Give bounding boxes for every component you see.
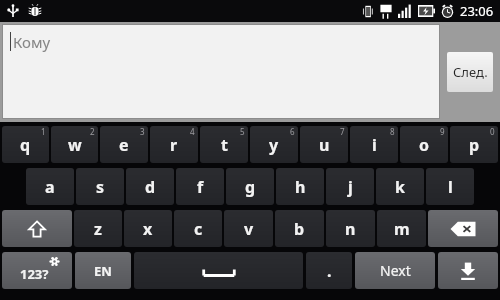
button[interactable]: c: [174, 210, 222, 247]
staticText: o: [419, 134, 430, 156]
staticText: .: [327, 260, 332, 282]
button[interactable]: След.: [447, 52, 493, 92]
staticText: r: [170, 134, 178, 156]
staticText: 5: [240, 126, 245, 137]
staticText: 8: [390, 126, 395, 137]
button[interactable]: t: [200, 126, 248, 163]
staticText: 123?: [20, 265, 49, 283]
button[interactable]: w: [51, 126, 98, 163]
button[interactable]: g: [226, 168, 274, 205]
staticText: t: [221, 134, 228, 156]
staticText: c: [194, 218, 203, 240]
button[interactable]: Next: [355, 252, 435, 289]
button[interactable]: y: [250, 126, 298, 163]
button[interactable]: Shift: [2, 210, 72, 247]
button[interactable]: x: [124, 210, 172, 247]
staticText: b: [294, 218, 305, 240]
staticText: 9: [440, 126, 445, 137]
button[interactable]: z: [74, 210, 122, 247]
button[interactable]: Hide keyboard: [438, 252, 498, 289]
button[interactable]: k: [376, 168, 424, 205]
button[interactable]: p: [450, 126, 498, 163]
button[interactable]: o: [400, 126, 448, 163]
staticText: След.: [453, 63, 488, 81]
button[interactable]: v: [224, 210, 273, 247]
button[interactable]: s: [76, 168, 124, 205]
staticText: i: [372, 134, 377, 156]
staticText: Next: [380, 261, 411, 280]
staticText: e: [119, 134, 129, 156]
button[interactable]: q: [2, 126, 49, 163]
staticText: w: [68, 134, 82, 156]
button[interactable]: e: [100, 126, 148, 163]
staticText: 7: [340, 126, 345, 137]
button[interactable]: Кому: [3, 25, 439, 118]
button[interactable]: u: [300, 126, 348, 163]
button[interactable]: EN: [75, 252, 131, 289]
button[interactable]: r: [150, 126, 198, 163]
staticText: q: [20, 134, 31, 156]
button[interactable]: Space: [134, 252, 303, 289]
staticText: Кому: [13, 32, 51, 52]
staticText: y: [269, 134, 279, 156]
staticText: l: [448, 176, 453, 198]
staticText: k: [395, 176, 405, 198]
staticText: EN: [94, 262, 112, 280]
button[interactable]: i: [350, 126, 398, 163]
staticText: z: [94, 218, 102, 240]
button[interactable]: 123?: [2, 252, 72, 289]
button[interactable]: b: [275, 210, 324, 247]
staticText: a: [45, 176, 55, 198]
staticText: 2: [90, 126, 95, 137]
staticText: 4: [190, 126, 195, 137]
staticText: p: [469, 134, 480, 156]
button[interactable]: d: [126, 168, 174, 205]
button[interactable]: l: [426, 168, 474, 205]
staticText: 1: [41, 126, 46, 137]
staticText: 6: [290, 126, 295, 137]
staticText: 0: [490, 126, 495, 137]
button[interactable]: n: [326, 210, 375, 247]
staticText: h: [295, 176, 306, 198]
button[interactable]: j: [326, 168, 374, 205]
button[interactable]: h: [276, 168, 324, 205]
staticText: n: [345, 218, 356, 240]
button[interactable]: a: [26, 168, 74, 205]
staticText: 23:06: [460, 2, 494, 20]
staticText: s: [96, 176, 105, 198]
staticText: j: [348, 176, 353, 198]
staticText: d: [145, 176, 156, 198]
staticText: f: [197, 176, 204, 198]
button[interactable]: .: [306, 252, 352, 289]
staticText: m: [394, 218, 410, 240]
staticText: x: [143, 218, 153, 240]
button[interactable]: m: [377, 210, 426, 247]
button[interactable]: Backspace: [428, 210, 498, 247]
button[interactable]: f: [176, 168, 224, 205]
staticText: u: [319, 134, 330, 156]
staticText: 3: [140, 126, 145, 137]
staticText: v: [244, 218, 254, 240]
staticText: g: [245, 176, 256, 198]
